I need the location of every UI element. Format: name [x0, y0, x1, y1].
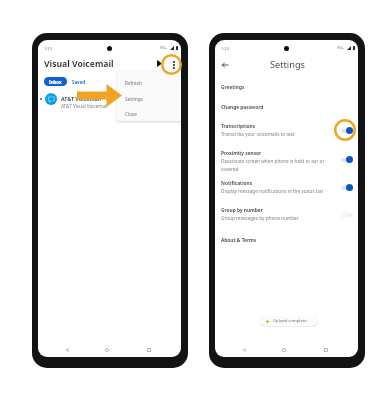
- button[interactable]: On: [341, 184, 353, 191]
- button[interactable]: On: [341, 156, 353, 163]
- staticText: 1:23: [221, 46, 229, 51]
- button[interactable]: Home: [277, 343, 290, 356]
- staticText: Display message notifications in the sta…: [221, 188, 324, 194]
- staticText: Notifications: [221, 180, 253, 187]
- button[interactable]: About & Terms: [215, 236, 358, 247]
- button[interactable]: Recent apps: [319, 343, 332, 356]
- staticText: Upload complete: [273, 318, 307, 324]
- button[interactable]: Change password: [215, 103, 358, 114]
- button[interactable]: Back: [61, 343, 74, 356]
- button[interactable]: Notifications: [215, 179, 358, 195]
- staticText: Close: [125, 111, 137, 117]
- staticText: Settings: [270, 58, 305, 71]
- staticText: Transcribe your voicemails to text: [221, 131, 295, 137]
- button[interactable]: Inbox: [44, 77, 67, 86]
- staticText: Settings: [125, 96, 143, 102]
- staticText: 90+: [160, 45, 168, 51]
- button[interactable]: AT&T Voicemail: [38, 90, 181, 108]
- button[interactable]: On: [341, 127, 353, 134]
- staticText: Refresh: [125, 80, 142, 86]
- button[interactable]: Proximity sensor: [215, 149, 358, 170]
- button[interactable]: Back: [218, 58, 232, 72]
- staticText: Group by number: [221, 207, 263, 214]
- staticText: Inbox: [49, 79, 62, 85]
- staticText: 1:23: [44, 46, 52, 51]
- button[interactable]: Upload complete: [260, 316, 318, 326]
- staticText: Group messages by phone number: [221, 215, 299, 221]
- button[interactable]: Saved: [67, 77, 90, 86]
- staticText: Visual Voicemail: [44, 58, 114, 70]
- button[interactable]: Home: [100, 343, 113, 356]
- staticText: Greetings: [221, 84, 245, 91]
- button[interactable]: Back: [238, 343, 251, 356]
- staticText: 90+: [337, 45, 345, 51]
- staticText: Proximity sensor: [221, 150, 262, 157]
- staticText: Saved: [72, 79, 85, 85]
- button[interactable]: Transcriptions: [215, 122, 358, 138]
- staticText: About & Terms: [221, 237, 257, 244]
- staticText: Transcriptions: [221, 123, 256, 130]
- button[interactable]: Settings: [117, 91, 181, 107]
- button[interactable]: Recent apps: [142, 343, 155, 356]
- staticText: Change password: [221, 104, 264, 111]
- button[interactable]: Refresh: [117, 75, 181, 91]
- button[interactable]: Close: [117, 107, 181, 121]
- staticText: Deactivate screen when phone is held to …: [221, 158, 325, 171]
- button[interactable]: Group by number: [215, 206, 358, 222]
- button[interactable]: More options: [167, 58, 181, 72]
- button[interactable]: Off: [341, 211, 353, 218]
- button[interactable]: Greetings: [215, 83, 358, 94]
- staticText: AT&T Voicemail: [61, 95, 101, 102]
- staticText: AT&T Visual Voicemail: [61, 103, 108, 109]
